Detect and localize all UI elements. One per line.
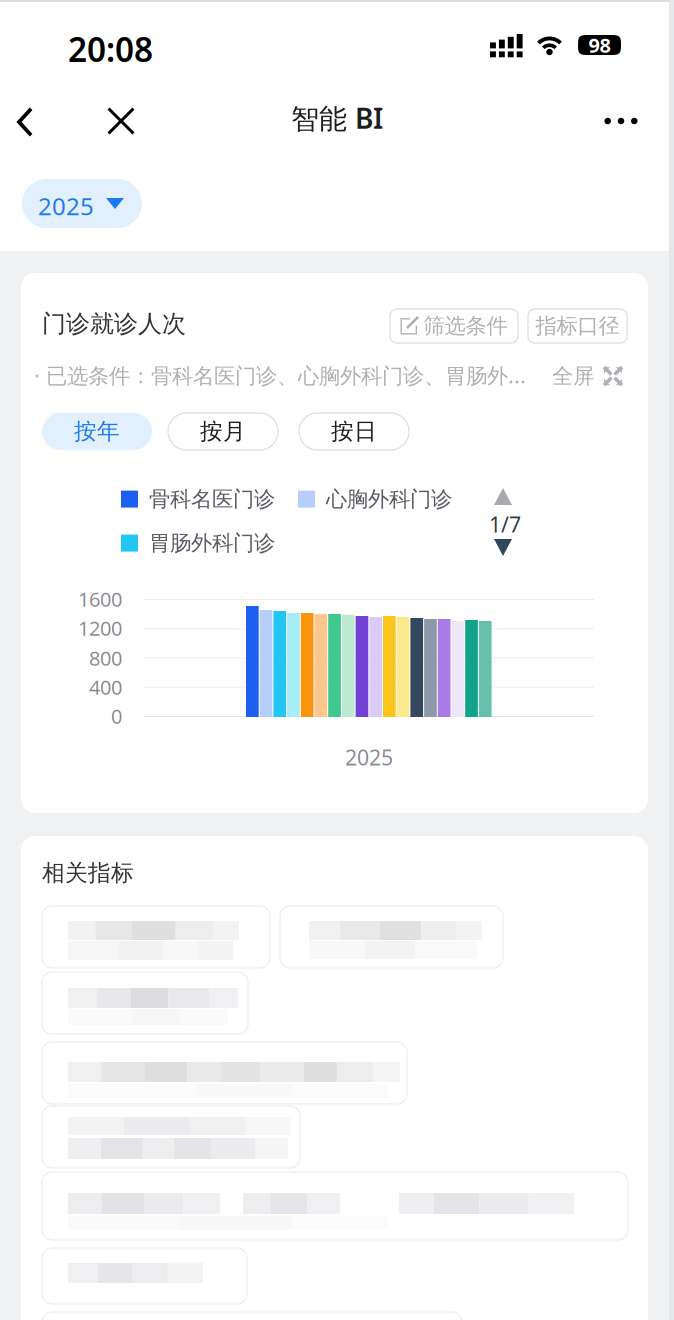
staticText: 按日 (331, 418, 377, 445)
staticText: 心胸外科门诊 (326, 486, 452, 512)
button[interactable]: 指标口径 (528, 309, 627, 343)
staticText: 1200 (78, 615, 122, 641)
button[interactable]: Close (91, 91, 151, 151)
button[interactable]: Back (0, 92, 51, 152)
staticText: 按月 (200, 418, 246, 445)
staticText: 20:08 (68, 27, 153, 71)
staticText: 骨科名医门诊 (149, 486, 275, 512)
button[interactable]: 按年 (42, 413, 152, 450)
staticText: 1600 (78, 586, 122, 612)
staticText: 98 (588, 32, 610, 58)
button[interactable]: More options (591, 91, 651, 151)
button[interactable]: Previous legend page (494, 488, 512, 505)
staticText: · 已选条件：骨科名医门诊、心胸外科门诊、胃肠外... (34, 361, 526, 389)
staticText: 指标口径 (535, 313, 619, 339)
staticText: 1/7 (489, 510, 521, 538)
button[interactable]: 按月 (168, 413, 278, 450)
staticText: 相关指标 (42, 859, 134, 887)
staticText: 2025 (38, 190, 94, 222)
staticText: 胃肠外科门诊 (149, 530, 275, 556)
staticText: 400 (89, 674, 122, 700)
staticText: 2025 (345, 743, 393, 771)
staticText: 按年 (74, 418, 120, 445)
button[interactable]: 2025 (22, 179, 142, 228)
button[interactable]: 筛选条件 (390, 309, 518, 343)
staticText: 智能 BI (291, 99, 383, 137)
staticText: 筛选条件 (423, 313, 507, 339)
staticText: 800 (89, 645, 122, 671)
button[interactable]: 按日 (299, 413, 409, 450)
staticText: 全屏 (552, 363, 594, 389)
staticText: 0 (111, 703, 122, 729)
button[interactable]: 全屏 (552, 363, 622, 389)
button[interactable]: Next legend page (494, 539, 512, 556)
staticText: 门诊就诊人次 (42, 309, 186, 338)
